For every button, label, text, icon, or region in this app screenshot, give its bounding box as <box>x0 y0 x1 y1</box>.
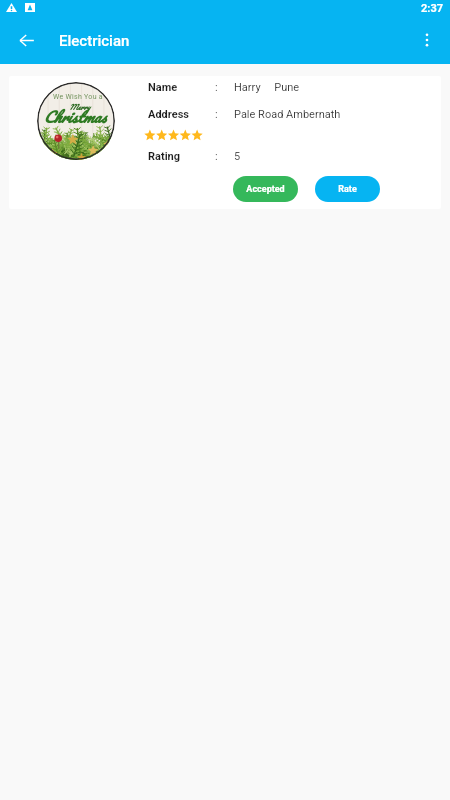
staticText: 2:37 <box>421 2 444 15</box>
button[interactable]: Rate <box>315 176 380 202</box>
staticText: Pale Road Ambernath <box>234 108 341 121</box>
button[interactable]: More options <box>412 24 442 56</box>
staticText: : <box>215 108 234 121</box>
staticText: Name <box>148 81 215 94</box>
staticText: Rate <box>338 184 357 195</box>
staticText: Rating <box>148 150 215 163</box>
staticText: Christmas <box>43 104 106 129</box>
staticText: Accepted <box>246 184 285 195</box>
staticText: : <box>215 81 234 94</box>
staticText: Electrician <box>59 32 130 50</box>
staticText: We Wish You a <box>53 93 103 101</box>
button[interactable]: Back <box>9 24 43 56</box>
staticText: Merry <box>69 101 90 113</box>
staticText: 5 <box>234 150 241 163</box>
button[interactable]: Accepted <box>233 176 298 202</box>
staticText: Harry Pune <box>234 81 300 94</box>
staticText: Address <box>148 108 215 121</box>
staticText: : <box>215 150 234 163</box>
